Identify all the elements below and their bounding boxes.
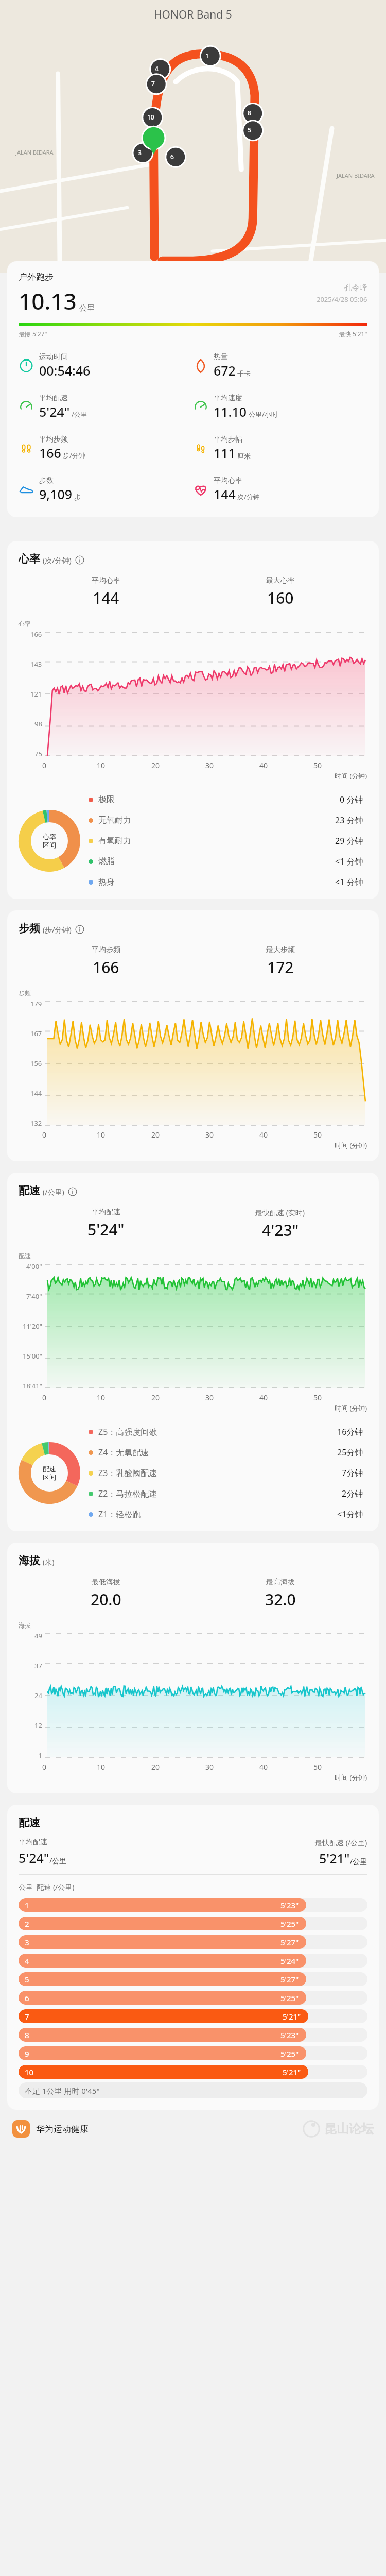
button[interactable]: Z3：乳酸阈配速: [89, 1467, 363, 1479]
button[interactable]: 6: [19, 1991, 367, 2005]
button[interactable]: 平均速度: [193, 394, 367, 420]
staticText: 15'00": [23, 1351, 42, 1361]
staticText: 3: [138, 148, 142, 157]
button[interactable]: 极限: [89, 794, 363, 805]
button[interactable]: 1: [19, 1898, 367, 1912]
staticText: 25分钟: [337, 1447, 363, 1458]
staticText: 166: [93, 957, 119, 978]
staticText: Z1：轻松跑: [98, 1509, 337, 1520]
button[interactable]: 海拔: [7, 1543, 379, 1793]
staticText: 30: [205, 1393, 214, 1402]
button[interactable]: Z1：轻松跑: [89, 1509, 363, 1520]
staticText: JALAN BIDARA: [337, 172, 375, 179]
button[interactable]: 平均配速: [19, 394, 193, 420]
button[interactable]: 平均步幅: [193, 435, 367, 462]
staticText: 5'21": [283, 2067, 301, 2077]
button[interactable]: 运动时间: [19, 352, 193, 379]
staticText: 30: [205, 1762, 214, 1772]
staticText: 最大步频: [266, 945, 295, 955]
button[interactable]: 4: [19, 1954, 367, 1968]
staticText: /公里: [350, 1856, 367, 1866]
staticText: 平均速度: [214, 394, 242, 403]
staticText: /公里: [49, 1856, 67, 1866]
staticText: 最慢 5'27": [19, 330, 47, 338]
staticText: (次/分钟): [43, 555, 72, 565]
staticText: 50: [313, 1130, 322, 1140]
button[interactable]: 热量: [193, 352, 367, 379]
button[interactable]: 10: [19, 2065, 367, 2079]
button[interactable]: 配速: [7, 1173, 379, 1531]
staticText: 7分钟: [342, 1467, 363, 1479]
button[interactable]: 户外跑步: [7, 261, 379, 517]
staticText: Z4：无氧配速: [98, 1447, 337, 1458]
button[interactable]: Z2：马拉松配速: [89, 1488, 363, 1499]
button[interactable]: 9: [19, 2046, 367, 2060]
staticText: 5'24": [87, 1219, 125, 1240]
staticText: 144: [30, 1089, 42, 1098]
button[interactable]: 说明: [68, 1187, 77, 1196]
button[interactable]: 步数: [19, 476, 193, 503]
staticText: 心率: [43, 833, 56, 841]
staticText: 公里: [79, 303, 95, 313]
button[interactable]: 平均心率: [193, 476, 367, 503]
staticText: 12: [34, 1721, 42, 1730]
staticText: 时间 (分钟): [335, 1141, 367, 1150]
staticText: 平均心率: [214, 476, 242, 485]
staticText: 平均配速: [39, 394, 68, 403]
button[interactable]: 说明: [75, 925, 84, 934]
staticText: 4: [25, 1956, 29, 1966]
staticText: 00:54:46: [39, 362, 91, 379]
staticText: 29 分钟: [335, 835, 363, 846]
button[interactable]: 心率: [7, 541, 379, 899]
staticText: 5'24": [39, 403, 70, 420]
button[interactable]: 3: [19, 1935, 367, 1949]
button[interactable]: 2: [19, 1917, 367, 1930]
button[interactable]: 燃脂: [89, 856, 363, 867]
staticText: 步/分钟: [63, 451, 85, 460]
staticText: 5: [248, 126, 251, 134]
staticText: 0: [42, 760, 47, 770]
staticText: 2025/4/28 05:06: [317, 295, 367, 304]
button[interactable]: Z4：无氧配速: [89, 1447, 363, 1458]
button[interactable]: 平均步频: [19, 435, 193, 462]
staticText: 4'23": [262, 1219, 299, 1241]
button[interactable]: 不足 1公里 用时 0'45": [19, 2082, 367, 2098]
button[interactable]: 热身: [89, 876, 363, 888]
staticText: 7: [25, 2011, 29, 2022]
staticText: 厘米: [237, 452, 251, 460]
staticText: -1: [36, 1751, 42, 1760]
button[interactable]: Z5：高强度间歇: [89, 1426, 363, 1437]
staticText: 不足 1公里 用时 0'45": [25, 2086, 100, 2096]
button[interactable]: 步频: [7, 910, 379, 1161]
staticText: (步/分钟): [43, 925, 72, 935]
staticText: 111: [214, 444, 236, 462]
staticText: 心率: [19, 620, 31, 628]
staticText: 5'24": [280, 1956, 299, 1966]
staticText: 昆山论坛: [324, 2121, 374, 2137]
staticText: 0 分钟: [340, 794, 363, 805]
staticText: 20.0: [91, 1589, 121, 1610]
staticText: 156: [30, 1059, 42, 1068]
button[interactable]: 5: [19, 1972, 367, 1986]
staticText: 143: [30, 659, 42, 669]
button[interactable]: 无氧耐力: [89, 815, 363, 826]
staticText: 40: [259, 760, 268, 770]
staticText: 132: [30, 1118, 42, 1128]
staticText: 最快 5'21": [339, 330, 367, 338]
button[interactable]: 8: [19, 2028, 367, 2042]
button[interactable]: 7: [19, 2009, 367, 2023]
staticText: 平均步幅: [214, 435, 242, 444]
staticText: JALAN BIDARA: [15, 148, 54, 156]
staticText: 时间 (分钟): [335, 1403, 367, 1413]
button[interactable]: 有氧耐力: [89, 835, 363, 846]
staticText: 6: [170, 152, 174, 161]
staticText: 23 分钟: [335, 815, 363, 826]
staticText: 1: [205, 52, 209, 60]
staticText: 30: [205, 1130, 214, 1140]
button[interactable]: 说明: [75, 555, 84, 565]
staticText: 160: [267, 587, 294, 608]
button[interactable]: 华为运动健康: [12, 2120, 89, 2138]
button[interactable]: 配速: [7, 1805, 379, 2110]
staticText: 0: [42, 1393, 47, 1402]
staticText: 公里 配速 (/公里): [19, 1882, 75, 1892]
